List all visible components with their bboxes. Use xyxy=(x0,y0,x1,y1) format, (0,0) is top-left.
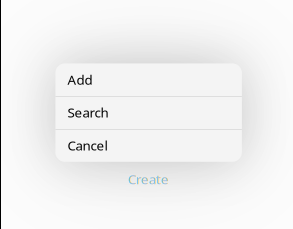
staticText: Add xyxy=(67,71,92,88)
staticText: Search xyxy=(67,103,108,121)
button[interactable]: Add xyxy=(55,63,242,96)
button[interactable]: Search xyxy=(55,96,242,129)
button[interactable]: Create xyxy=(117,169,179,189)
staticText: Create xyxy=(128,170,169,188)
button[interactable]: Cancel xyxy=(55,129,242,162)
staticText: Cancel xyxy=(67,136,107,154)
